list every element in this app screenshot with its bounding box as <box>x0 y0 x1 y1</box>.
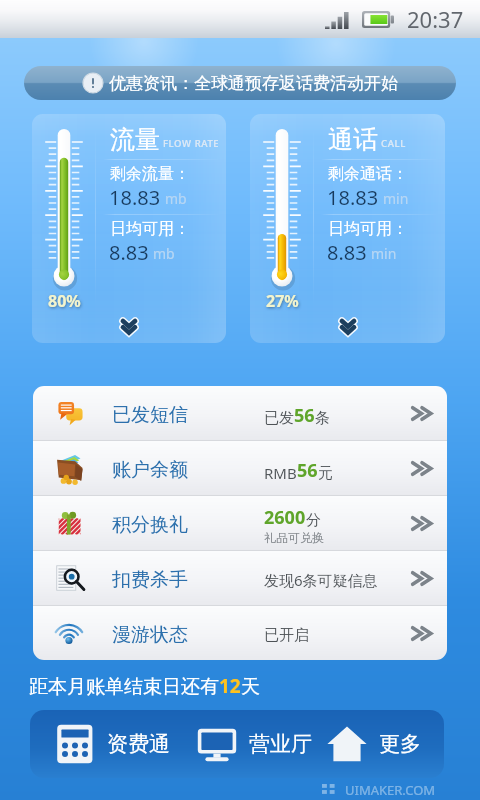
staticText: 发现6条可疑信息 <box>264 570 378 590</box>
staticText: 已开启 <box>264 626 309 645</box>
button[interactable]: 账户余额 <box>33 441 447 495</box>
button[interactable]: 营业厅 <box>195 710 314 778</box>
staticText: CALL <box>381 137 406 150</box>
staticText: 剩余流量： <box>110 164 190 184</box>
button[interactable]: 已发短信 <box>33 386 447 440</box>
staticText: 礼品可兑换 <box>264 530 324 545</box>
staticText: mb <box>153 244 175 263</box>
staticText: 条 <box>315 409 330 428</box>
staticText: min <box>371 244 397 263</box>
staticText: FLOW RATE <box>163 137 220 150</box>
staticText: UIMAKER.COM <box>345 781 436 799</box>
staticText: 18.83 <box>327 184 379 211</box>
staticText: 日均可用： <box>328 219 408 239</box>
staticText: 更多 <box>379 731 421 757</box>
staticText: 27% <box>266 290 299 312</box>
staticText: 距本月账单结束日还有 <box>29 675 219 699</box>
staticText: 资费通 <box>107 731 170 757</box>
other: 积分换礼 <box>409 515 435 532</box>
staticText: 分 <box>306 511 321 530</box>
staticText: 已发短信 <box>112 403 188 427</box>
staticText: 56 <box>294 403 315 428</box>
staticText: 扣费杀手 <box>112 568 188 592</box>
other: 扣费杀手 <box>409 570 435 587</box>
staticText: mb <box>165 189 187 208</box>
staticText: 账户余额 <box>112 458 188 482</box>
staticText: RMB <box>264 463 297 483</box>
button[interactable]: 27% <box>250 114 445 343</box>
other: Expand <box>121 319 137 336</box>
staticText: 元 <box>318 464 333 483</box>
staticText: 8.83 <box>109 239 149 266</box>
button[interactable]: 资费通 <box>53 710 172 778</box>
staticText: 8.83 <box>327 239 367 266</box>
staticText: 已发 <box>264 409 294 428</box>
other: Expand <box>340 319 356 336</box>
button[interactable]: 漫游状态 <box>33 606 447 660</box>
staticText: 日均可用： <box>110 219 190 239</box>
staticText: 积分换礼 <box>112 513 188 537</box>
staticText: 漫游状态 <box>112 623 188 647</box>
staticText: 2600 <box>264 505 306 530</box>
other: 漫游状态 <box>409 625 435 642</box>
button[interactable]: 积分换礼 <box>33 496 447 550</box>
button[interactable]: 扣费杀手 <box>33 551 447 605</box>
staticText: 天 <box>241 675 260 699</box>
staticText: 流量 <box>110 124 160 155</box>
staticText: 营业厅 <box>249 731 312 757</box>
staticText: 通话 <box>328 124 378 155</box>
staticText: 20:37 <box>407 4 464 34</box>
staticText: 优惠资讯：全球通预存返话费活动开始 <box>109 73 398 94</box>
button[interactable]: 80% <box>32 114 226 343</box>
other: 账户余额 <box>409 460 435 477</box>
button[interactable]: 更多 <box>325 710 423 778</box>
staticText: 80% <box>48 290 81 312</box>
button[interactable]: 优惠资讯：全球通预存返话费活动开始 <box>24 66 456 100</box>
other: 已发短信 <box>409 405 435 422</box>
staticText: 剩余通话： <box>328 164 408 184</box>
staticText: 56 <box>297 458 318 483</box>
staticText: 18.83 <box>109 184 161 211</box>
staticText: min <box>383 189 409 208</box>
staticText: 12 <box>219 673 241 699</box>
